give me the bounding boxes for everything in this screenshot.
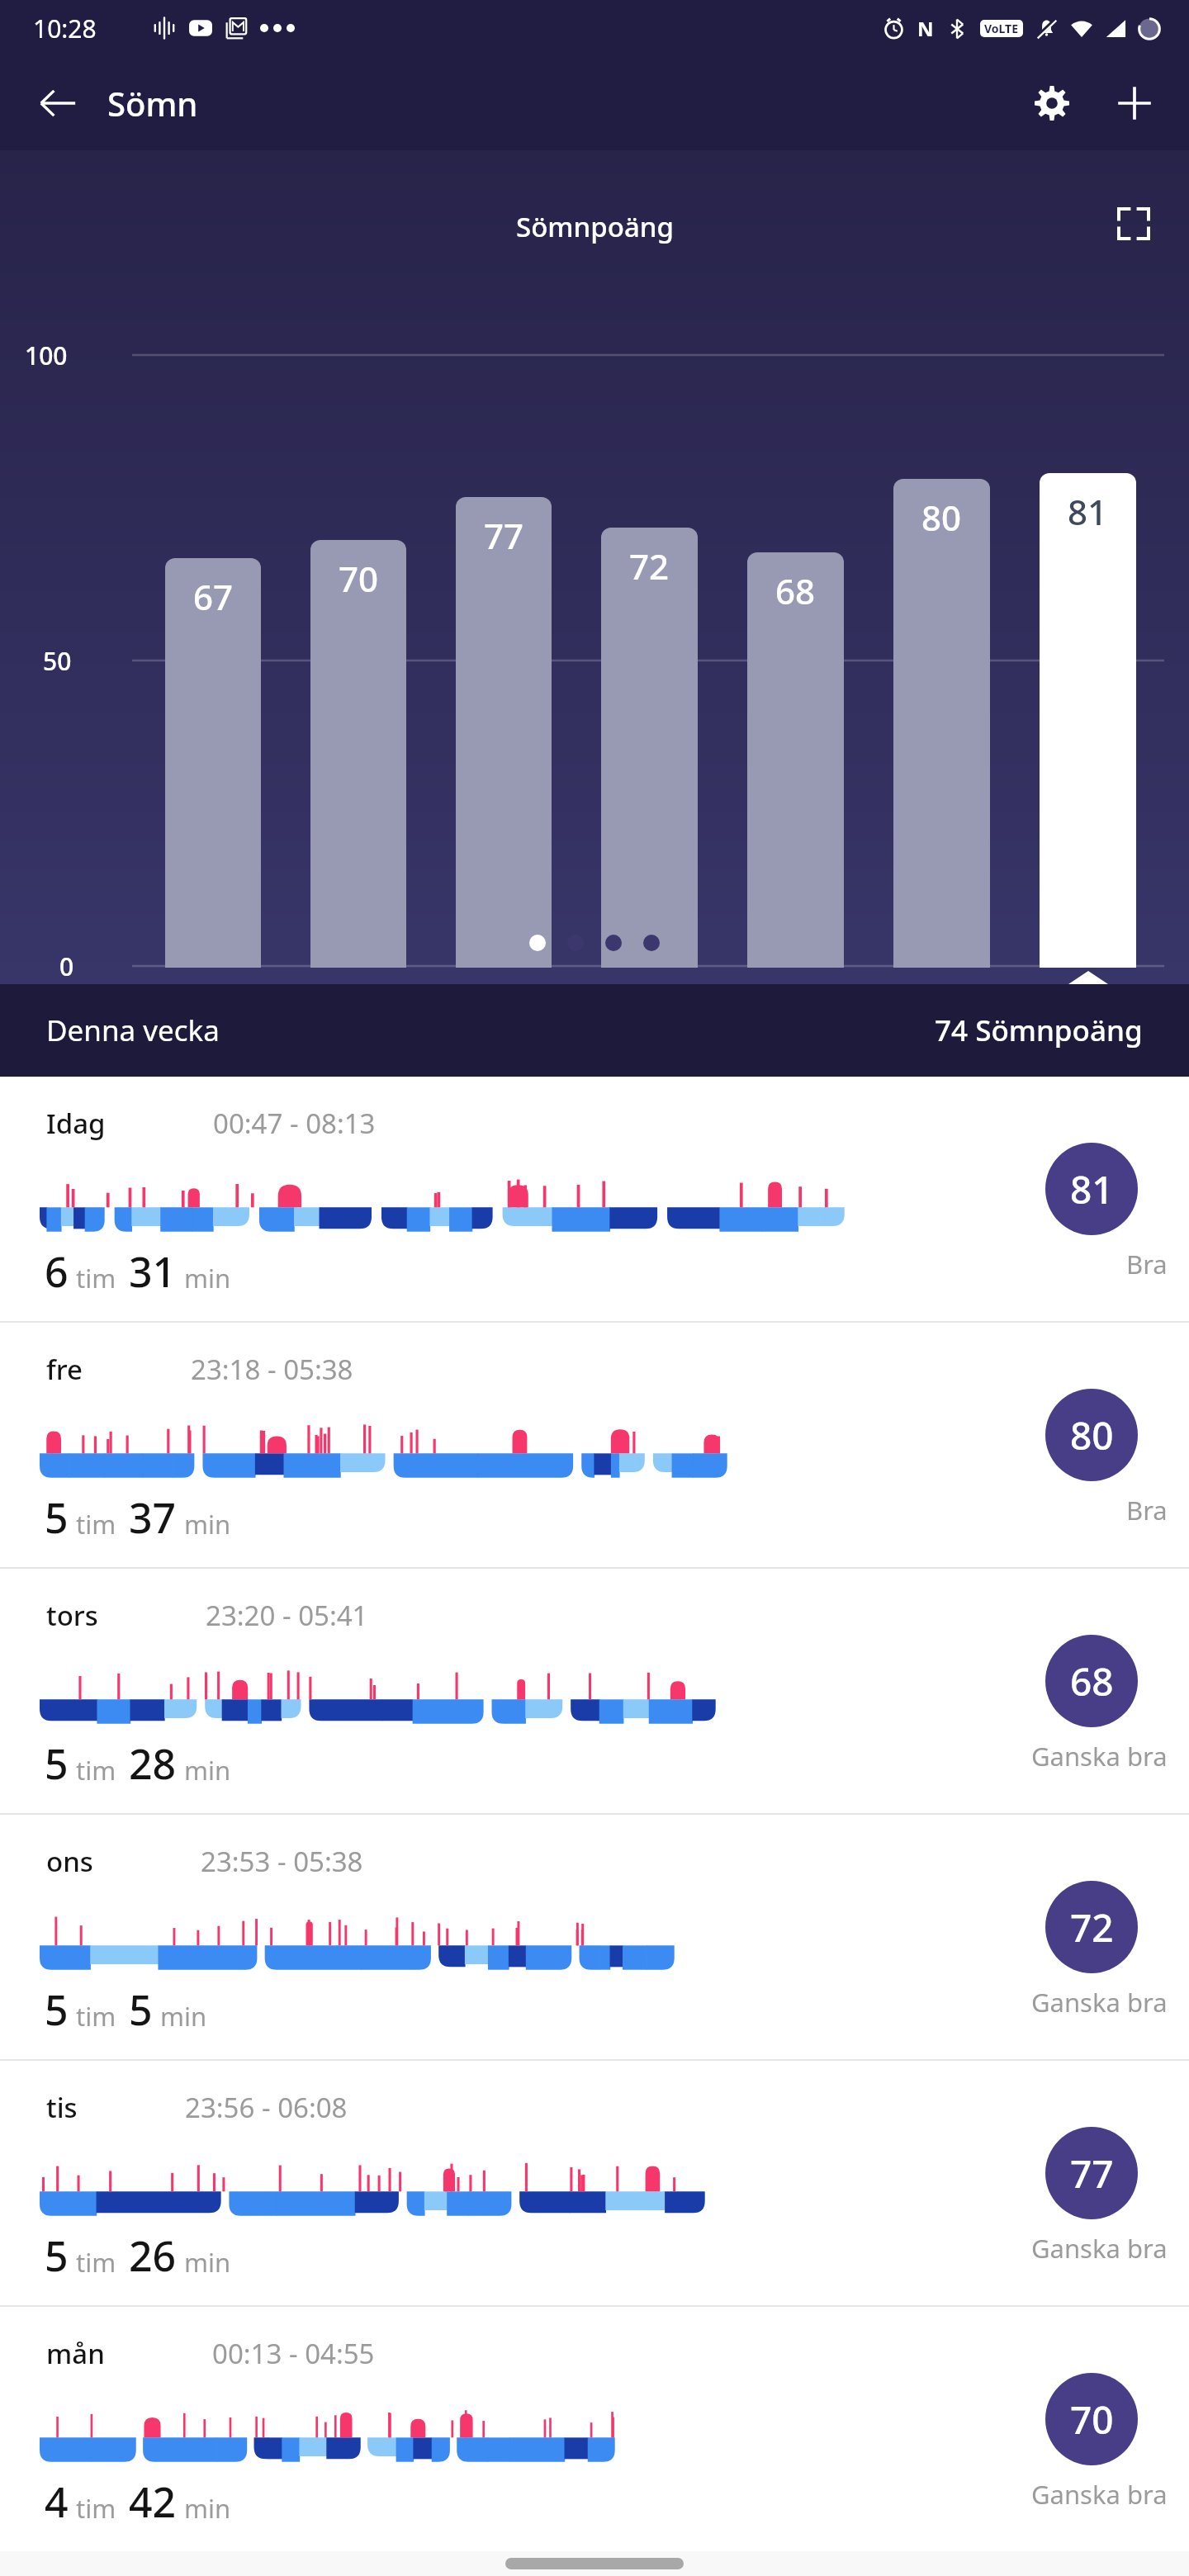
- staticText: 5: [45, 1735, 69, 1792]
- staticText: tim: [76, 2245, 116, 2280]
- button[interactable]: Idag: [0, 1077, 1189, 1321]
- staticText: 6: [45, 1243, 69, 1300]
- button[interactable]: Expand chart: [1095, 185, 1172, 263]
- staticText: Sömn: [107, 81, 198, 125]
- staticText: 31: [129, 1243, 177, 1300]
- staticText: min: [184, 1753, 231, 1788]
- staticText: 23:56 - 06:08: [185, 2089, 348, 2126]
- staticText: 00:13 - 04:55: [212, 2335, 375, 2372]
- staticText: Ganska bra: [1031, 2231, 1168, 2266]
- staticText: Ganska bra: [1031, 2477, 1168, 2512]
- button[interactable]: 67: [165, 558, 261, 968]
- staticText: Ganska bra: [1031, 1985, 1168, 2020]
- staticText: min: [160, 1999, 207, 2034]
- staticText: min: [184, 1261, 231, 1295]
- staticText: 5: [45, 1489, 69, 1546]
- staticText: 70: [1070, 2394, 1114, 2446]
- staticText: 28: [129, 1735, 177, 1792]
- staticText: F: [935, 986, 949, 1022]
- button[interactable]: 68: [747, 552, 844, 968]
- staticText: L: [1081, 986, 1096, 1022]
- staticText: 80: [1070, 1409, 1114, 1461]
- staticText: Sömnpoäng: [516, 208, 674, 245]
- staticText: 81: [1070, 1163, 1114, 1215]
- staticText: tors: [46, 1597, 98, 1634]
- button[interactable]: 80: [893, 479, 990, 968]
- staticText: 50: [43, 644, 72, 678]
- staticText: Idag: [46, 1105, 106, 1142]
- staticText: VoLTE: [984, 21, 1019, 36]
- staticText: 5: [129, 1982, 153, 2038]
- button[interactable]: 77: [456, 497, 552, 968]
- button[interactable]: tors: [0, 1569, 1189, 1813]
- staticText: 68: [775, 567, 816, 614]
- staticText: Denna vecka: [46, 1011, 220, 1050]
- staticText: Bra: [1126, 1493, 1168, 1527]
- button[interactable]: [605, 935, 622, 951]
- staticText: fre: [46, 1351, 83, 1388]
- staticText: min: [184, 1507, 231, 1541]
- staticText: 23:53 - 05:38: [201, 1843, 363, 1880]
- button[interactable]: Add: [1093, 62, 1176, 144]
- staticText: min: [184, 2491, 231, 2526]
- staticText: 23:18 - 05:38: [191, 1351, 353, 1388]
- staticText: Ganska bra: [1031, 1739, 1168, 1773]
- staticText: ons: [46, 1843, 93, 1880]
- staticText: 77: [1070, 2147, 1114, 2200]
- staticText: tim: [76, 1261, 116, 1295]
- button[interactable]: 72: [601, 528, 698, 968]
- staticText: tim: [76, 1999, 116, 2034]
- staticText: 0: [59, 949, 74, 983]
- staticText: N: [917, 15, 934, 42]
- button[interactable]: [529, 935, 546, 951]
- staticText: 37: [129, 1489, 177, 1546]
- staticText: tim: [76, 1507, 116, 1541]
- staticText: 67: [193, 573, 234, 620]
- button[interactable]: [643, 935, 660, 951]
- staticText: 72: [629, 542, 670, 590]
- staticText: 74 Sömnpoäng: [935, 1011, 1143, 1050]
- button[interactable]: mån: [0, 2307, 1189, 2551]
- staticText: 5: [45, 1982, 69, 2038]
- staticText: tis: [46, 2089, 78, 2126]
- button[interactable]: ons: [0, 1815, 1189, 2059]
- button[interactable]: 70: [310, 540, 406, 968]
- staticText: 10:28: [33, 12, 97, 45]
- staticText: 100: [25, 339, 68, 372]
- staticText: 81: [1068, 488, 1108, 535]
- staticText: 77: [484, 512, 524, 559]
- staticText: tim: [76, 2491, 116, 2526]
- staticText: 68: [1070, 1655, 1114, 1707]
- button[interactable]: Settings: [1011, 62, 1093, 144]
- staticText: tim: [76, 1753, 116, 1788]
- staticText: 80: [921, 494, 962, 541]
- staticText: 42: [129, 2474, 177, 2530]
- staticText: Bra: [1126, 1247, 1168, 1281]
- staticText: 26: [129, 2228, 177, 2284]
- staticText: 00:47 - 08:13: [213, 1105, 376, 1142]
- staticText: mån: [46, 2335, 105, 2372]
- staticText: 70: [339, 555, 379, 602]
- button[interactable]: Back: [17, 62, 99, 144]
- button[interactable]: tis: [0, 2061, 1189, 2305]
- staticText: min: [184, 2245, 231, 2280]
- staticText: 4: [45, 2474, 69, 2530]
- button[interactable]: 81: [1040, 473, 1136, 968]
- staticText: 23:20 - 05:41: [206, 1597, 368, 1634]
- staticText: 72: [1070, 1901, 1114, 1953]
- staticText: 5: [45, 2228, 69, 2284]
- button[interactable]: fre: [0, 1323, 1189, 1567]
